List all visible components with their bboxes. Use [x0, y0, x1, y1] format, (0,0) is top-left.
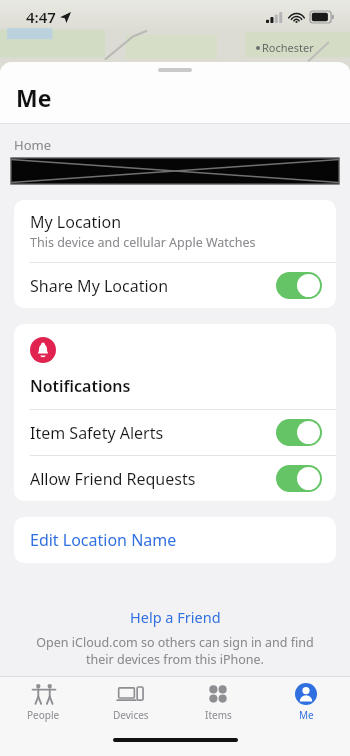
staticText: This device and cellular Apple Watches	[30, 234, 256, 251]
staticText: Share My Location	[30, 275, 276, 297]
staticText: Allow Friend Requests	[30, 468, 276, 490]
staticText: Help a Friend	[130, 607, 221, 627]
other: Me	[295, 683, 317, 705]
other: Notifications	[30, 337, 56, 363]
staticText: Rochester	[262, 40, 314, 55]
button[interactable]: Me	[262, 677, 350, 729]
staticText: My Location	[30, 211, 122, 233]
staticText: People	[27, 708, 60, 722]
button[interactable]: Help a Friend	[120, 605, 231, 629]
button[interactable]: Items	[174, 677, 262, 729]
button[interactable]: Devices	[87, 677, 174, 729]
staticText: Notifications	[30, 375, 131, 397]
button[interactable]: People	[0, 677, 87, 729]
staticText: 4:47	[26, 7, 56, 27]
staticText: Items	[205, 708, 232, 722]
button[interactable]: Item Safety Alerts	[14, 410, 336, 455]
staticText: Devices	[113, 708, 149, 722]
staticText: Item Safety Alerts	[30, 422, 276, 444]
staticText: Me	[16, 82, 52, 113]
other: People	[31, 683, 57, 705]
staticText: Home	[14, 136, 51, 154]
other: Devices	[117, 683, 145, 705]
staticText: Edit Location Name	[30, 529, 177, 551]
staticText: Open iCloud.com so others can sign in an…	[28, 634, 322, 668]
button[interactable]: Edit Location Name	[14, 517, 336, 563]
button[interactable]: My Location	[14, 200, 336, 262]
other: Items	[207, 683, 229, 705]
button[interactable]: Notifications	[14, 324, 336, 409]
button[interactable]: Allow Friend Requests	[14, 456, 336, 501]
staticText: Me	[299, 708, 314, 722]
button[interactable]: Share My Location	[14, 263, 336, 308]
